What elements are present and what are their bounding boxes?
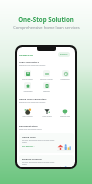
staticText: One-Stop Solution: [18, 15, 74, 23]
button[interactable]: Affordability: [18, 82, 37, 92]
staticText: Home Loan: [22, 135, 36, 138]
staticText: Estimate your home loan options: [19, 101, 46, 103]
staticText: HOMELOAN: [19, 53, 34, 56]
button[interactable]: Balance Transfer: [37, 70, 56, 80]
staticText: Get your documents ready and apply easil…: [22, 139, 56, 144]
button[interactable]: Prepayment: [56, 70, 74, 80]
staticText: Loan Amount: [22, 115, 33, 117]
staticText: Comprehensive home loan services: [13, 25, 80, 30]
button[interactable]: Explore: [58, 52, 70, 57]
staticText: Explore: [60, 53, 68, 56]
staticText: Loan Calculators: [19, 60, 39, 63]
staticText: Balance Transfer: [40, 78, 53, 80]
button[interactable]: Balance Transfer: [19, 155, 74, 167]
button[interactable]: Home Loan: [19, 133, 74, 153]
staticText: Keep your documents handy: [19, 128, 42, 130]
button[interactable]: Interest Rate: [56, 107, 74, 117]
staticText: Estimate your home loan options: [19, 64, 46, 66]
staticText: EMI Calculator: [22, 78, 33, 80]
button[interactable]: Eligibility: [37, 82, 56, 92]
button[interactable]: Loan Tenure: [37, 107, 56, 117]
staticText: Get your documents ready and apply easil…: [22, 161, 56, 166]
staticText: Home Loan Calculators: [19, 97, 47, 100]
button[interactable]: Loan Amount: [18, 107, 37, 117]
staticText: Documentation: [19, 124, 38, 127]
staticText: Eligibility: [43, 90, 50, 92]
staticText: Loan Tenure: [42, 115, 52, 117]
staticText: Balance Transfer: [22, 157, 42, 160]
staticText: Affordability: [23, 90, 33, 92]
staticText: Interest Rate: [60, 115, 70, 117]
staticText: Prepayment: [60, 78, 70, 80]
staticText: Key Benefits ›: [22, 145, 35, 148]
button[interactable]: EMI Calculator: [18, 70, 37, 80]
